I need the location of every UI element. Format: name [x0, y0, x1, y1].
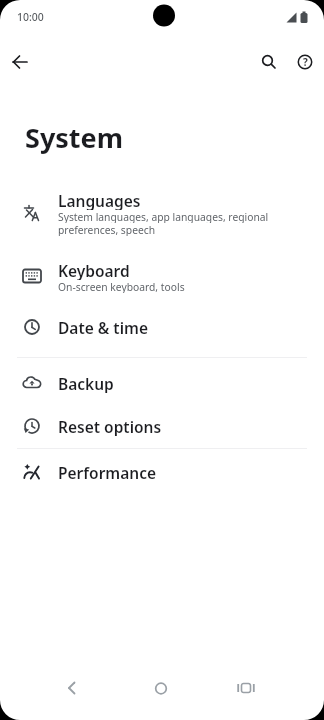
- staticText: Keyboard: [58, 260, 130, 280]
- staticText: Backup: [58, 373, 114, 393]
- staticText: System languages, app languages, regiona…: [58, 210, 269, 223]
- staticText: ?: [303, 55, 308, 69]
- staticText: Reset options: [58, 416, 162, 436]
- button[interactable]: [226, 668, 266, 708]
- button[interactable]: [52, 668, 92, 708]
- staticText: preferences, speech: [58, 223, 156, 236]
- button[interactable]: Date & time: [0, 307, 324, 347]
- button[interactable]: Backup: [0, 363, 324, 403]
- staticText: On-screen keyboard, tools: [58, 280, 185, 293]
- staticText: Date & time: [58, 317, 148, 337]
- button[interactable]: Keyboard: [0, 252, 324, 300]
- button[interactable]: [6, 48, 34, 76]
- button[interactable]: [255, 48, 283, 76]
- button[interactable]: Performance: [0, 452, 324, 492]
- button[interactable]: [141, 668, 181, 708]
- button[interactable]: ?: [291, 48, 319, 76]
- staticText: Performance: [58, 462, 157, 482]
- staticText: System: [25, 119, 124, 156]
- staticText: Languages: [58, 190, 141, 210]
- button[interactable]: Reset options: [0, 406, 324, 446]
- button[interactable]: Languages: [0, 186, 324, 242]
- staticText: 10:00: [17, 10, 44, 24]
